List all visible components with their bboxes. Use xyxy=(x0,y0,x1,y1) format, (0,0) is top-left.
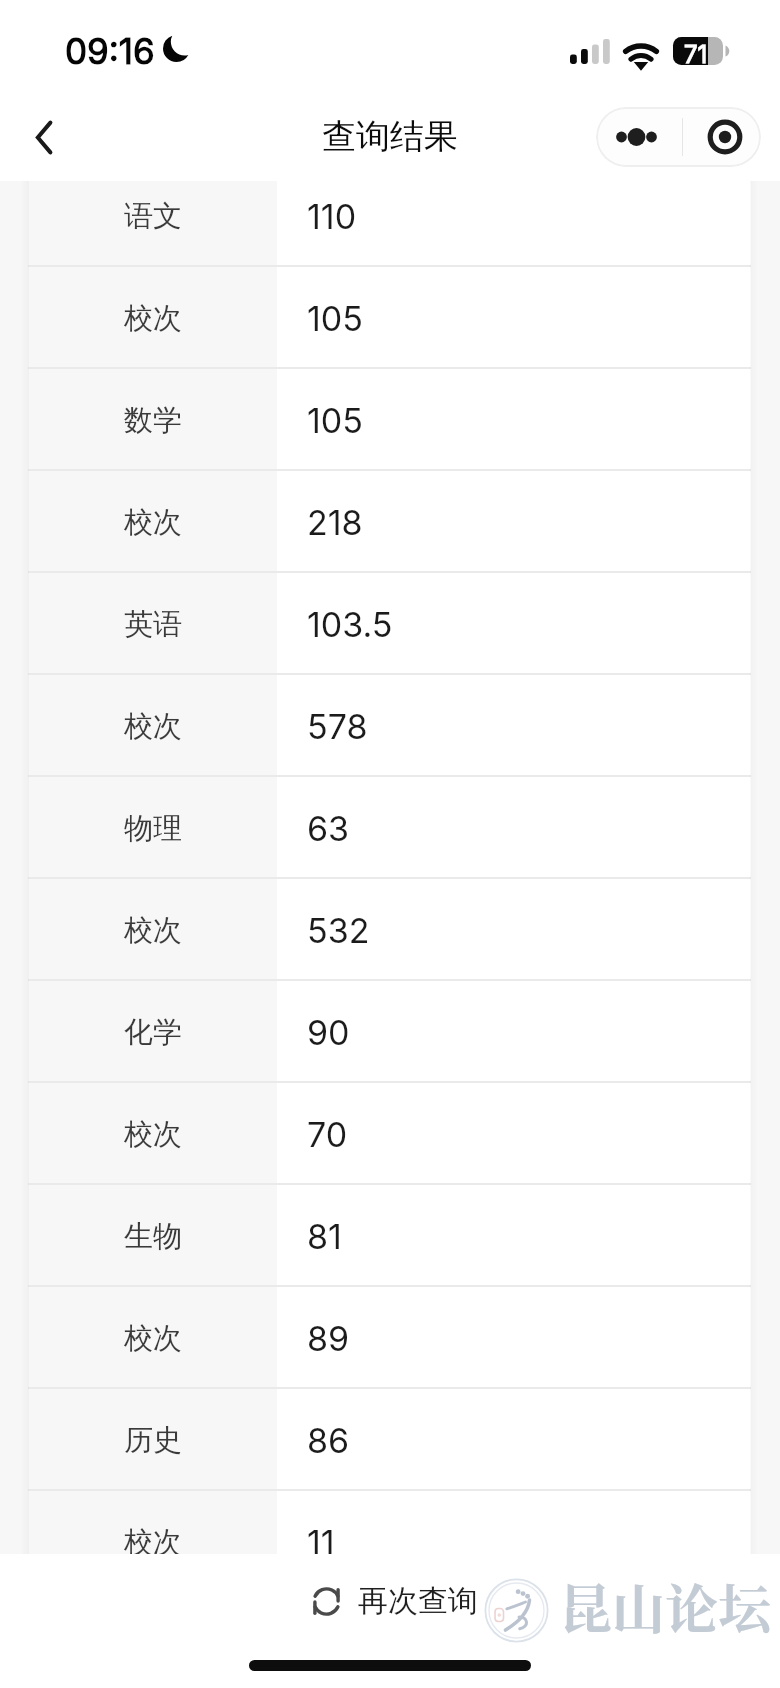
staticText: 查询结果 xyxy=(322,115,458,158)
staticText: 校次 xyxy=(124,1524,182,1554)
staticText: 化学 xyxy=(124,1014,182,1051)
staticText: 11 xyxy=(307,1522,335,1554)
staticText: 86 xyxy=(307,1420,350,1461)
staticText: 89 xyxy=(307,1318,350,1359)
staticText: 105 xyxy=(307,400,363,441)
button[interactable]: More options xyxy=(596,107,682,167)
button[interactable]: 校次 xyxy=(0,1083,780,1185)
staticText: 再次查询 xyxy=(358,1582,478,1620)
staticText: 校次 xyxy=(124,504,182,541)
button[interactable]: Close mini program xyxy=(683,107,761,167)
staticText: 校次 xyxy=(124,912,182,949)
staticText: 105 xyxy=(307,298,363,339)
staticText: 09:16 xyxy=(65,30,155,72)
staticText: 71 xyxy=(684,40,708,69)
staticText: 110 xyxy=(307,196,357,237)
button[interactable]: 数学 xyxy=(0,369,780,471)
button[interactable]: 生物 xyxy=(0,1185,780,1287)
staticText: 校次 xyxy=(124,708,182,745)
button[interactable]: 语文 xyxy=(0,165,780,267)
staticText: 63 xyxy=(307,808,350,849)
staticText: 昆山论坛 xyxy=(559,1568,771,1644)
button[interactable]: 物理 xyxy=(0,777,780,879)
staticText: 物理 xyxy=(124,810,182,847)
staticText: 校次 xyxy=(124,1320,182,1357)
staticText: 语文 xyxy=(124,198,182,235)
button[interactable]: 校次 xyxy=(0,675,780,777)
staticText: 578 xyxy=(307,706,368,747)
staticText: 历史 xyxy=(124,1422,182,1459)
button[interactable]: 历史 xyxy=(0,1389,780,1491)
button[interactable]: 校次 xyxy=(0,879,780,981)
button[interactable]: 英语 xyxy=(0,573,780,675)
staticText: 532 xyxy=(307,910,370,951)
button[interactable]: 校次 xyxy=(0,267,780,369)
staticText: 70 xyxy=(307,1114,348,1155)
button[interactable]: 校次 xyxy=(0,1287,780,1389)
staticText: 校次 xyxy=(124,300,182,337)
staticText: 生物 xyxy=(124,1218,182,1255)
staticText: 数学 xyxy=(124,402,182,439)
staticText: 90 xyxy=(307,1012,350,1053)
button[interactable]: 校次 xyxy=(0,471,780,573)
staticText: 英语 xyxy=(124,606,182,643)
button[interactable]: 再次查询 xyxy=(311,1582,478,1620)
button[interactable]: Back xyxy=(16,106,72,162)
staticText: 103.5 xyxy=(307,604,393,645)
button[interactable]: 化学 xyxy=(0,981,780,1083)
staticText: 81 xyxy=(307,1216,342,1257)
staticText: 218 xyxy=(307,502,363,543)
button[interactable]: 校次 xyxy=(0,1491,780,1554)
staticText: 校次 xyxy=(124,1116,182,1153)
